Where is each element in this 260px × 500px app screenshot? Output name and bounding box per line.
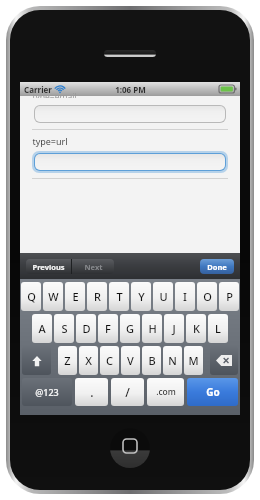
staticText: M [188, 353, 199, 368]
staticText: D [82, 321, 91, 336]
staticText: W [48, 289, 59, 304]
button[interactable]: P [219, 282, 239, 311]
button[interactable]: I [175, 282, 195, 311]
staticText: V [127, 353, 134, 368]
staticText: Y [138, 289, 145, 304]
staticText: N [168, 353, 177, 368]
staticText: O [203, 289, 212, 304]
staticText: Done [207, 262, 227, 272]
staticText: U [159, 289, 168, 304]
staticText: F [105, 321, 111, 336]
staticText: / [125, 384, 130, 400]
button[interactable]: J [164, 314, 184, 343]
staticText: Carrier [24, 84, 52, 95]
button[interactable]: W [43, 282, 63, 311]
staticText: @123 [35, 386, 59, 398]
button[interactable]: Go [187, 378, 238, 406]
button[interactable] [34, 153, 226, 171]
staticText: .com [156, 386, 176, 398]
button[interactable]: Home [110, 428, 150, 468]
staticText: I [183, 289, 187, 304]
staticText: R [94, 289, 101, 304]
button[interactable]: / [111, 378, 144, 406]
staticText: A [38, 321, 46, 336]
button[interactable]: X [79, 346, 98, 375]
staticText: C [106, 353, 113, 368]
button[interactable]: V [121, 346, 140, 375]
staticText: Next [84, 262, 103, 272]
staticText: G [126, 321, 134, 336]
button[interactable]: Next [72, 259, 114, 274]
staticText: Previous [32, 262, 65, 272]
button[interactable]: R [87, 282, 107, 311]
button[interactable]: B [142, 346, 161, 375]
staticText: E [72, 289, 79, 304]
button[interactable]: O [197, 282, 217, 311]
staticText: T [116, 289, 123, 304]
button[interactable]: C [100, 346, 119, 375]
staticText: P [226, 289, 233, 304]
staticText: type=email [32, 91, 77, 98]
button[interactable]: F [98, 314, 118, 343]
button[interactable]: N [163, 346, 182, 375]
staticText: Q [27, 289, 36, 304]
button[interactable]: Done [200, 259, 234, 274]
button[interactable]: U [153, 282, 173, 311]
staticText: H [148, 321, 157, 336]
staticText: K [193, 321, 200, 336]
staticText: . [90, 384, 94, 400]
button[interactable]: Previous [26, 259, 71, 274]
staticText: Z [64, 353, 71, 368]
staticText: L [215, 321, 221, 336]
button[interactable]: .com [147, 378, 184, 406]
button[interactable]: Shift [22, 346, 51, 375]
button[interactable]: D [76, 314, 96, 343]
staticText: Go [206, 385, 220, 399]
button[interactable]: . [75, 378, 108, 406]
button[interactable]: M [184, 346, 203, 375]
staticText: S [61, 321, 68, 336]
button[interactable]: Z [58, 346, 77, 375]
button[interactable]: H [142, 314, 162, 343]
button[interactable]: A [32, 314, 52, 343]
button[interactable]: L [208, 314, 228, 343]
button[interactable]: E [65, 282, 85, 311]
button[interactable]: @123 [22, 378, 72, 406]
staticText: type=url [32, 135, 68, 147]
button[interactable]: T [109, 282, 129, 311]
button[interactable]: Backspace [210, 346, 238, 375]
staticText: B [148, 353, 156, 368]
button[interactable]: G [120, 314, 140, 343]
button[interactable]: Y [131, 282, 151, 311]
staticText: X [85, 353, 92, 368]
button[interactable] [34, 105, 226, 123]
button[interactable]: K [186, 314, 206, 343]
staticText: 1:06 PM [115, 84, 146, 95]
staticText: J [172, 321, 176, 336]
button[interactable]: Q [21, 282, 41, 311]
button[interactable]: S [54, 314, 74, 343]
